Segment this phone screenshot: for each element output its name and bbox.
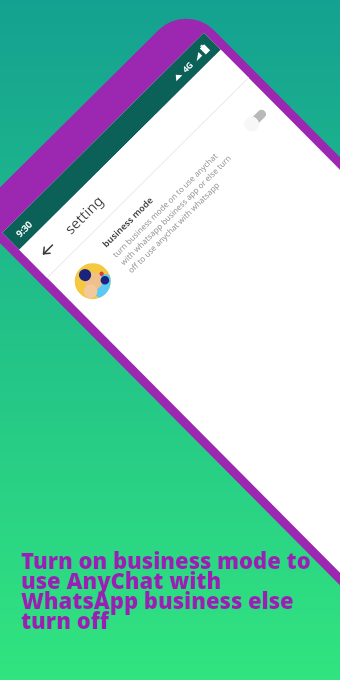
staticText: Turn on business mode to use AnyChat wit… [21, 545, 311, 635]
staticText: 9:30 [13, 218, 34, 239]
button[interactable]: business mode [47, 78, 297, 326]
button[interactable]: Back [29, 231, 66, 268]
button[interactable]: Toggle business mode [240, 101, 274, 135]
staticText: business mode [99, 194, 155, 249]
staticText: turn business mode on to use anychat wit… [110, 144, 241, 275]
staticText: 4G [180, 59, 195, 74]
staticText: setting [60, 190, 108, 238]
